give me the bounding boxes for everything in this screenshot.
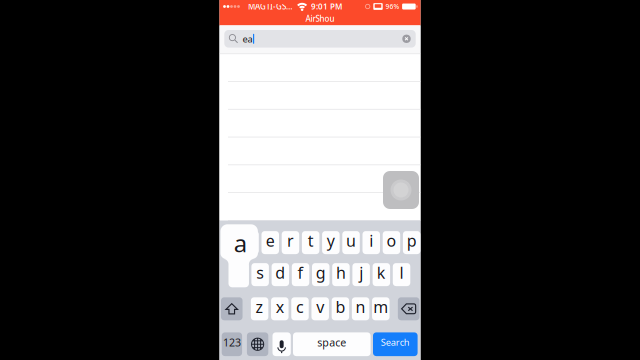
button[interactable]: ea xyxy=(224,30,416,48)
staticText: p xyxy=(407,230,417,251)
staticText: m xyxy=(373,296,388,317)
staticText: e xyxy=(266,230,275,251)
button[interactable] xyxy=(219,165,420,193)
staticText: 96% xyxy=(385,2,399,11)
button[interactable]: z xyxy=(251,297,268,320)
button[interactable]: b xyxy=(332,297,349,320)
button[interactable]: g xyxy=(312,263,329,286)
button[interactable]: q xyxy=(221,231,239,254)
button[interactable]: n xyxy=(352,297,369,320)
button[interactable]: 123 xyxy=(222,332,242,356)
staticText: x xyxy=(276,296,284,317)
button[interactable]: Dictate xyxy=(272,332,291,356)
button[interactable]: f xyxy=(292,263,309,286)
button[interactable]: Delete xyxy=(398,297,419,320)
button[interactable]: m xyxy=(372,297,390,320)
staticText: z xyxy=(256,296,264,317)
button[interactable]: l xyxy=(393,263,410,286)
button[interactable]: Search xyxy=(373,332,418,356)
staticText: k xyxy=(377,262,386,283)
staticText: n xyxy=(356,296,366,317)
staticText: c xyxy=(296,296,304,317)
staticText: s xyxy=(256,262,264,283)
staticText: MAGTI-GS… xyxy=(248,1,292,12)
staticText: r xyxy=(287,230,294,251)
button[interactable] xyxy=(219,82,420,110)
button[interactable]: r xyxy=(282,231,299,254)
button[interactable]: s xyxy=(251,263,269,286)
button[interactable]: Shift xyxy=(221,297,243,320)
staticText: ea xyxy=(242,33,252,45)
button[interactable]: t xyxy=(302,231,319,254)
button[interactable] xyxy=(219,54,420,82)
staticText: a xyxy=(234,227,247,259)
button[interactable]: Next keyboard xyxy=(247,332,268,356)
staticText: y xyxy=(327,230,335,251)
button[interactable]: w xyxy=(241,231,259,254)
staticText: AirShou xyxy=(305,13,334,24)
staticText: i xyxy=(369,230,373,251)
button[interactable] xyxy=(219,137,420,165)
staticText: w xyxy=(243,230,256,251)
staticText: b xyxy=(335,296,345,317)
staticText: f xyxy=(297,262,303,283)
button[interactable]: c xyxy=(291,297,309,320)
button[interactable]: h xyxy=(332,263,350,286)
button[interactable] xyxy=(219,193,420,221)
staticText: g xyxy=(316,262,326,283)
staticText: u xyxy=(346,230,356,251)
staticText: Search xyxy=(381,336,410,348)
button[interactable]: e xyxy=(261,231,279,254)
button[interactable]: space xyxy=(293,332,371,356)
button[interactable]: o xyxy=(383,231,400,254)
staticText: space xyxy=(317,335,346,349)
button[interactable]: k xyxy=(373,263,390,286)
button[interactable]: j xyxy=(352,263,370,286)
button[interactable]: d xyxy=(272,263,289,286)
button[interactable]: i xyxy=(362,231,380,254)
staticText: h xyxy=(336,262,346,283)
staticText: t xyxy=(308,230,314,251)
staticText: d xyxy=(275,262,285,283)
staticText: 9:01 PM xyxy=(311,1,342,12)
staticText: o xyxy=(386,230,396,251)
staticText: 123 xyxy=(223,335,241,349)
staticText: l xyxy=(399,262,403,283)
staticText: j xyxy=(359,262,363,283)
button[interactable]: x xyxy=(271,297,289,320)
button[interactable]: y xyxy=(322,231,340,254)
staticText: q xyxy=(225,230,235,251)
button[interactable]: v xyxy=(311,297,329,320)
staticText: v xyxy=(316,296,324,317)
button[interactable]: p xyxy=(403,231,420,254)
button[interactable]: u xyxy=(342,231,360,254)
